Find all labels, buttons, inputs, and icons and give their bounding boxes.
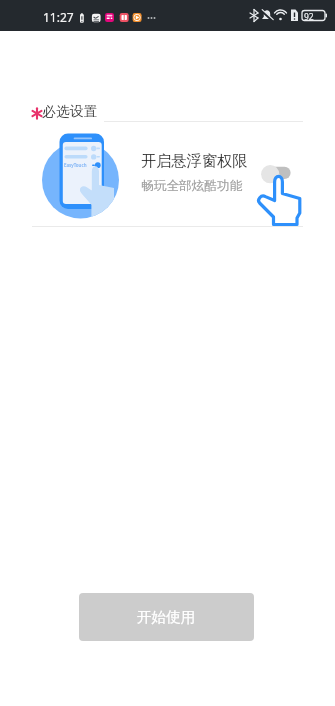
button[interactable]: Enable floating window permission bbox=[256, 162, 306, 230]
staticText: EasyTouch bbox=[64, 162, 87, 168]
staticText: 畅玩全部炫酷功能 bbox=[141, 178, 243, 194]
button[interactable]: 开始使用 bbox=[79, 593, 254, 641]
staticText: 92 bbox=[304, 11, 314, 23]
button[interactable]: EasyTouch bbox=[0, 122, 335, 227]
staticText: 必选设置 bbox=[42, 103, 98, 121]
staticText: 11:27 bbox=[43, 9, 74, 25]
staticText: 开始使用 bbox=[137, 608, 196, 626]
staticText: 开启悬浮窗权限 bbox=[141, 151, 248, 170]
